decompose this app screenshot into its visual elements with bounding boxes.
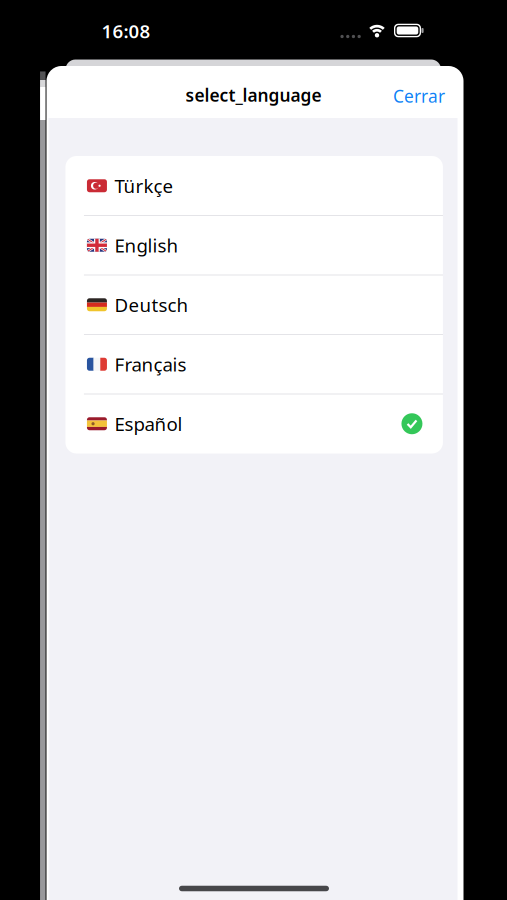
staticText: 16:08	[101, 19, 150, 43]
staticText: select_language	[185, 83, 321, 106]
button[interactable]: Français	[65, 334, 443, 394]
staticText: Deutsch	[114, 292, 188, 317]
button[interactable]: Español	[65, 394, 443, 453]
button[interactable]: Türkçe	[65, 156, 443, 215]
button[interactable]: English	[65, 215, 443, 275]
staticText: Cerrar	[393, 84, 445, 107]
button[interactable]: Deutsch	[65, 275, 443, 334]
button[interactable]: Cerrar	[393, 84, 445, 107]
staticText: Türkçe	[114, 173, 173, 198]
staticText: Español	[114, 411, 182, 436]
staticText: English	[114, 233, 178, 258]
staticText: Français	[114, 352, 186, 377]
